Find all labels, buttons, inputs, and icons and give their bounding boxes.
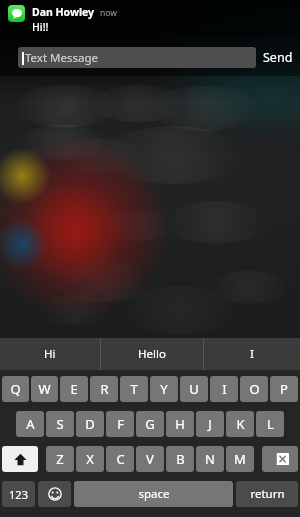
button[interactable]: Text Message xyxy=(18,47,256,68)
button[interactable]: L xyxy=(256,411,284,437)
staticText: V xyxy=(146,450,154,468)
staticText: Dan Howley xyxy=(32,5,95,19)
staticText: U xyxy=(189,380,199,398)
button[interactable]: D xyxy=(76,411,104,437)
button[interactable]: Emoji xyxy=(38,481,71,507)
staticText: O xyxy=(249,380,260,398)
staticText: T xyxy=(130,380,138,398)
staticText: D xyxy=(85,415,95,433)
staticText: I xyxy=(250,346,254,362)
button[interactable]: Send xyxy=(263,49,293,66)
staticText: S xyxy=(56,415,64,433)
button[interactable]: E xyxy=(60,376,88,402)
staticText: H xyxy=(175,415,185,433)
staticText: R xyxy=(100,380,109,398)
button[interactable]: Shift xyxy=(2,446,38,472)
button[interactable]: V xyxy=(136,446,164,472)
staticText: return xyxy=(250,486,285,502)
staticText: J xyxy=(208,415,212,433)
button[interactable]: Hi xyxy=(0,338,100,370)
button[interactable]: space xyxy=(74,481,233,507)
button[interactable]: I xyxy=(204,338,300,370)
button[interactable]: Hello xyxy=(101,338,203,370)
button[interactable]: O xyxy=(240,376,268,402)
button[interactable]: S xyxy=(46,411,74,437)
staticText: B xyxy=(176,450,185,468)
button[interactable]: U xyxy=(180,376,208,402)
staticText: Y xyxy=(160,380,168,398)
button[interactable]: P xyxy=(270,376,298,402)
button[interactable]: Backspace xyxy=(262,446,298,472)
button[interactable]: I xyxy=(210,376,238,402)
button[interactable]: R xyxy=(90,376,118,402)
staticText: W xyxy=(38,380,51,398)
staticText: Text Message xyxy=(25,50,99,66)
button[interactable]: N xyxy=(196,446,224,472)
staticText: X xyxy=(86,450,94,468)
staticText: L xyxy=(267,415,274,433)
staticText: E xyxy=(70,380,78,398)
staticText: space xyxy=(138,486,170,502)
staticText: Send xyxy=(263,49,293,66)
staticText: Hi!! xyxy=(32,20,49,34)
button[interactable]: C xyxy=(106,446,134,472)
staticText: M xyxy=(234,450,246,468)
button[interactable]: Y xyxy=(150,376,178,402)
button[interactable]: X xyxy=(76,446,104,472)
staticText: N xyxy=(205,450,215,468)
button[interactable]: J xyxy=(196,411,224,437)
button[interactable]: return xyxy=(236,481,298,507)
button[interactable]: M xyxy=(226,446,254,472)
staticText: 123 xyxy=(9,487,28,502)
staticText: now xyxy=(100,7,117,19)
staticText: I xyxy=(222,380,227,398)
staticText: G xyxy=(145,415,155,433)
button[interactable]: H xyxy=(166,411,194,437)
staticText: K xyxy=(236,415,245,433)
button[interactable]: Z xyxy=(46,446,74,472)
button[interactable]: K xyxy=(226,411,254,437)
button[interactable]: F xyxy=(106,411,134,437)
button[interactable]: 123 xyxy=(2,481,35,507)
button[interactable]: B xyxy=(166,446,194,472)
staticText: Q xyxy=(10,380,21,398)
button[interactable]: Q xyxy=(2,376,29,402)
staticText: Z xyxy=(56,450,64,468)
staticText: F xyxy=(117,415,124,433)
button[interactable]: G xyxy=(136,411,164,437)
button[interactable]: A xyxy=(16,411,44,437)
staticText: P xyxy=(280,380,288,398)
staticText: Hi xyxy=(44,346,56,362)
button[interactable]: Dan Howley xyxy=(0,0,300,38)
staticText: Hello xyxy=(138,346,166,362)
staticText: C xyxy=(116,450,125,468)
button[interactable]: W xyxy=(31,376,58,402)
staticText: A xyxy=(26,415,35,433)
button[interactable]: T xyxy=(120,376,148,402)
